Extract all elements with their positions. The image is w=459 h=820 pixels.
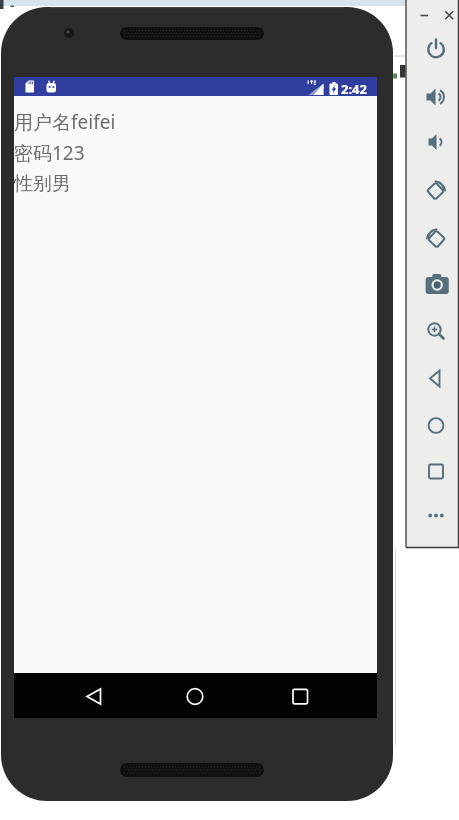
button[interactable]	[422, 83, 450, 112]
button[interactable]	[422, 176, 450, 205]
button[interactable]	[180, 681, 211, 712]
button[interactable]	[422, 501, 450, 530]
staticText: 用户名feifei	[14, 109, 116, 135]
button[interactable]	[422, 457, 450, 486]
button[interactable]	[442, 9, 456, 22]
button[interactable]	[14, 673, 377, 718]
button[interactable]	[78, 681, 109, 712]
staticText: 2:42	[341, 80, 367, 98]
button[interactable]	[422, 270, 450, 299]
staticText: 密码123	[14, 140, 85, 166]
button[interactable]	[422, 224, 450, 253]
button[interactable]	[422, 364, 450, 393]
button[interactable]	[422, 317, 450, 346]
button[interactable]	[422, 35, 450, 64]
button[interactable]	[422, 128, 450, 157]
button[interactable]	[417, 9, 431, 22]
button[interactable]	[285, 681, 316, 712]
button[interactable]	[422, 411, 450, 440]
staticText: 性别男	[14, 172, 71, 196]
